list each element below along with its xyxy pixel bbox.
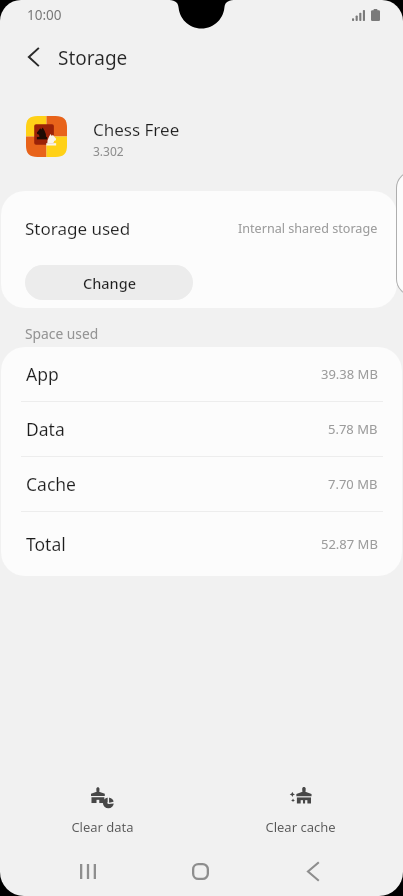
staticText: App	[26, 362, 59, 386]
button[interactable]: Cache	[1, 457, 402, 512]
staticText: 39.38 MB	[321, 365, 378, 383]
staticText: Internal shared storage	[238, 220, 378, 237]
button[interactable]: Total	[1, 512, 402, 576]
staticText: Storage	[58, 45, 128, 71]
button[interactable]: Back	[269, 847, 357, 895]
button[interactable]: Clear data	[42, 786, 162, 836]
staticText: 7.70 MB	[328, 475, 378, 493]
staticText: 3.302	[93, 143, 124, 159]
staticText: Space used	[25, 324, 99, 343]
staticText: Storage used	[25, 217, 131, 240]
button[interactable]: Back	[13, 38, 53, 76]
button[interactable]: Storage used	[1, 191, 397, 308]
staticText: Data	[26, 417, 65, 441]
staticText: Clear data	[71, 818, 134, 836]
staticText: Cache	[26, 472, 76, 496]
staticText: 10:00	[27, 6, 62, 24]
staticText: Change	[83, 273, 136, 293]
button[interactable]: Home	[156, 847, 244, 895]
staticText: Total	[26, 532, 66, 556]
staticText: 5.78 MB	[328, 420, 378, 438]
button[interactable]: App	[1, 347, 402, 402]
staticText: 52.87 MB	[321, 535, 378, 553]
button[interactable]: Clear cache	[240, 786, 360, 836]
button[interactable]: Data	[1, 402, 402, 457]
button[interactable]: Change	[25, 265, 193, 300]
button[interactable]: Recent apps	[44, 847, 132, 895]
staticText: Clear cache	[265, 818, 336, 836]
staticText: Chess Free	[93, 118, 180, 141]
